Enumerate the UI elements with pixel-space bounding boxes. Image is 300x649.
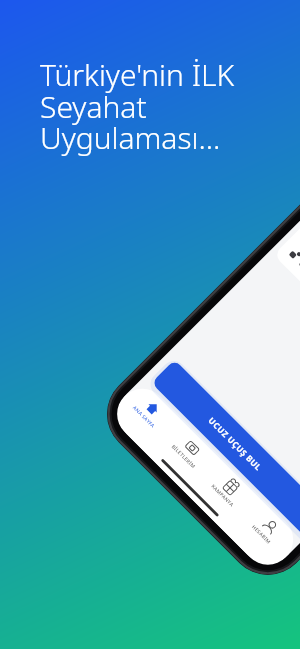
staticText: Türkiye'nin İLK Seyahat Uygulaması... — [40, 54, 235, 158]
